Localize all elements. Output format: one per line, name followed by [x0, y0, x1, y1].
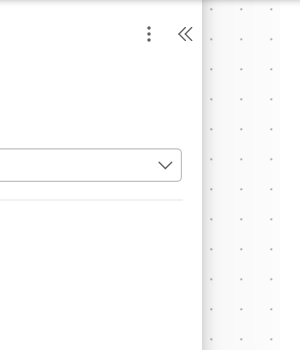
button[interactable]: Collapse panel [168, 18, 200, 50]
button[interactable] [0, 148, 182, 182]
button[interactable]: More options [133, 18, 165, 50]
